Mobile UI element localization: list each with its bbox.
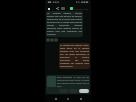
staticText: Este entrevista el tipo de los servicios… — [57, 76, 89, 88]
button[interactable]: Home — [66, 97, 70, 101]
button[interactable]: Dislike — [54, 38, 58, 42]
button[interactable]: Model picker — [61, 7, 65, 10]
staticText: La llegada del adjetivo "Vivir" tiene da… — [60, 44, 89, 68]
button[interactable]: Back — [54, 97, 58, 101]
button[interactable]: Recents — [79, 97, 83, 101]
button[interactable]: Copy — [46, 38, 50, 42]
button[interactable]: Close — [46, 6, 51, 11]
button[interactable]: Share — [55, 6, 60, 11]
staticText: De hombre general, cuando intenté unir u… — [47, 12, 82, 36]
button[interactable] — [79, 89, 89, 93]
button[interactable]: Like — [50, 38, 54, 42]
staticText: Dismiss alert — [74, 7, 89, 10]
